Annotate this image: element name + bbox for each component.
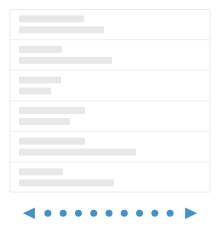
button[interactable]: Previous page [23,207,35,219]
button[interactable]: Next page [185,207,197,219]
